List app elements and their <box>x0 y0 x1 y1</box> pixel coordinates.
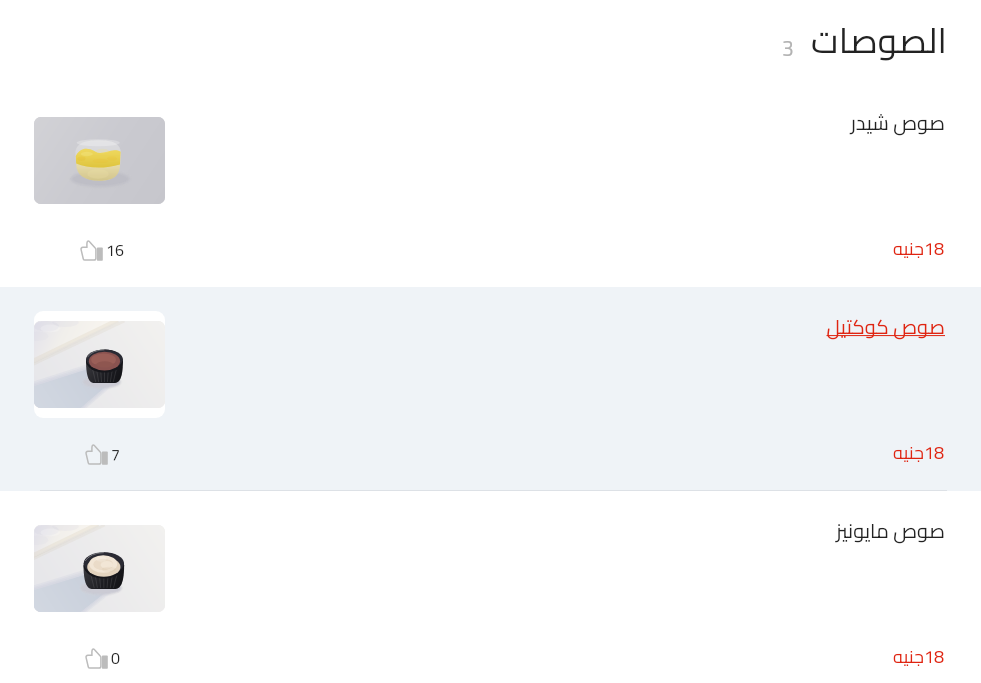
button[interactable]: صوص مايونيز <box>0 491 981 683</box>
staticText: جنيه <box>893 436 924 470</box>
staticText: 18 <box>924 436 945 470</box>
staticText: 18 <box>924 640 945 674</box>
staticText: جنيه <box>893 232 924 266</box>
staticText: 0 <box>111 643 120 673</box>
button[interactable]: صوص شيدر <box>0 83 981 287</box>
staticText: صوص شيدر <box>0 104 945 141</box>
staticText: 7 <box>111 439 120 469</box>
staticText: 16 <box>106 235 124 265</box>
staticText: صوص كوكتيل <box>0 308 945 345</box>
staticText: جنيه <box>893 640 924 674</box>
staticText: صوص مايونيز <box>0 512 945 549</box>
staticText: الصوصات <box>811 7 947 73</box>
staticText: 18 <box>924 232 945 266</box>
staticText: 3 <box>782 29 794 68</box>
button[interactable]: صوص كوكتيل <box>0 287 981 491</box>
